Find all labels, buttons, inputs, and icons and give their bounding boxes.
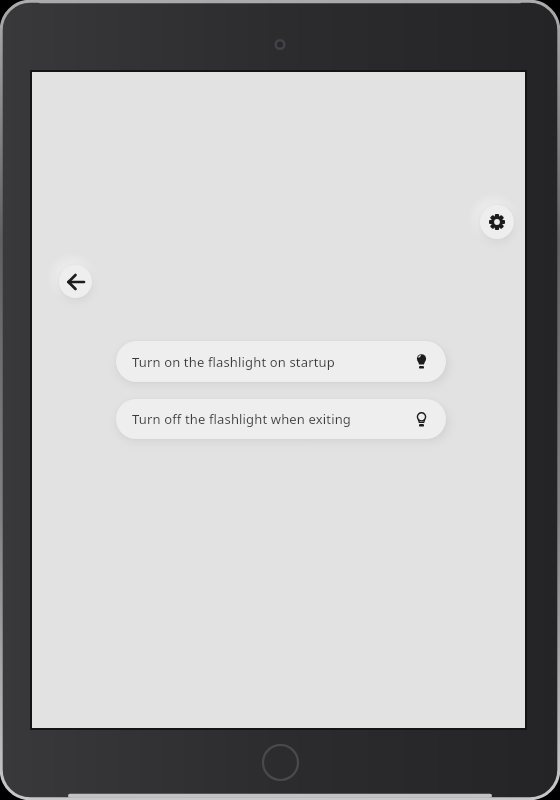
button[interactable]: Turn on the flashlight on startup xyxy=(116,341,446,382)
staticText: Turn on the flashlight on startup xyxy=(132,353,335,371)
staticText: Turn off the flashlight when exiting xyxy=(132,410,351,428)
button[interactable] xyxy=(59,265,92,298)
button[interactable] xyxy=(480,205,514,239)
button[interactable]: Turn off the flashlight when exiting xyxy=(116,399,446,439)
